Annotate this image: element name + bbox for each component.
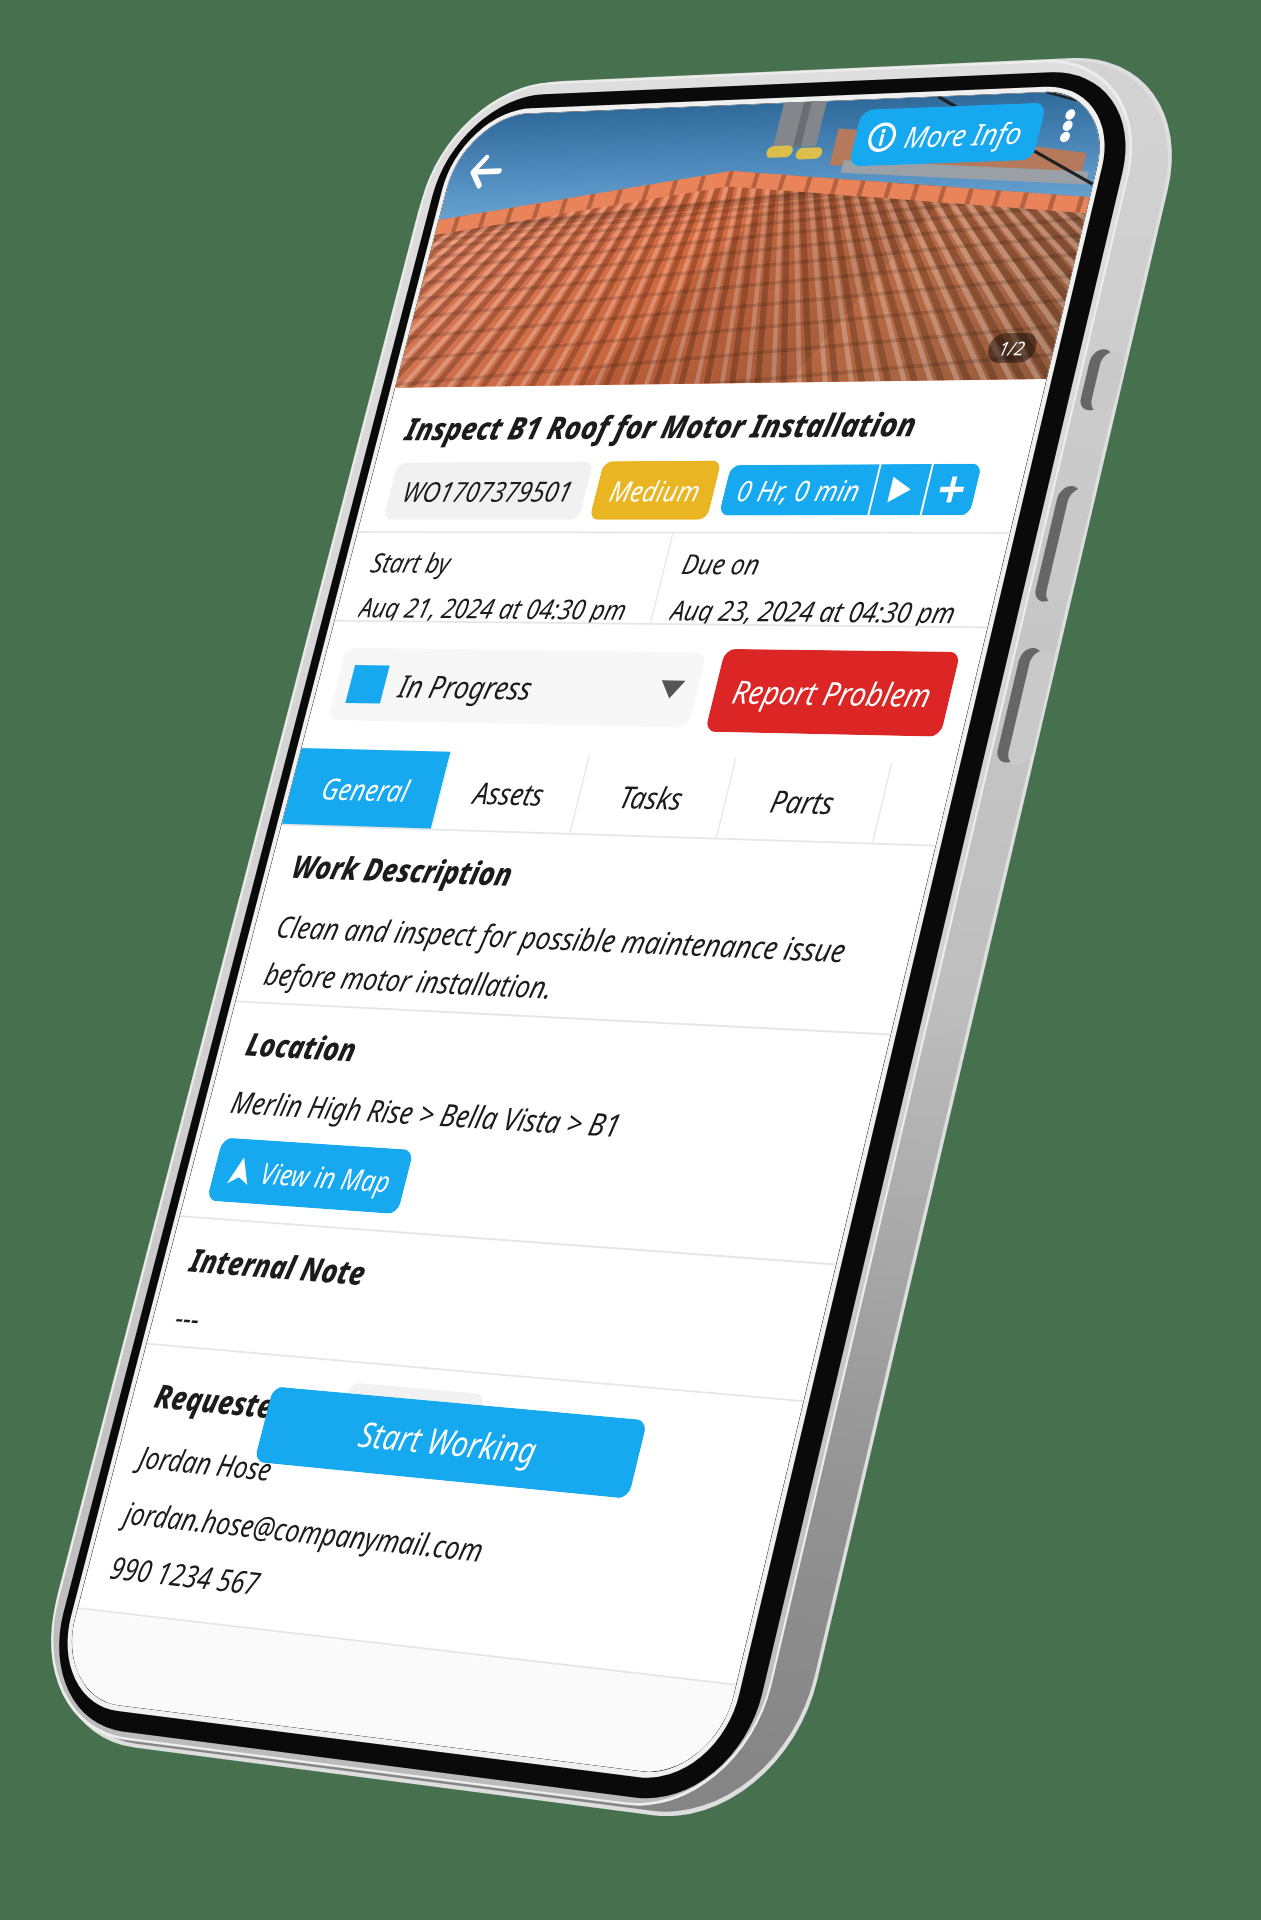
button[interactable]: More options — [916, 20, 970, 74]
staticText: Assets — [294, 913, 402, 967]
staticText: Location — [36, 1258, 211, 1315]
staticText: Parts — [747, 913, 839, 967]
staticText: Requested by — [36, 1725, 307, 1782]
staticText: Internal Note — [36, 1546, 313, 1603]
button[interactable]: Assets — [240, 887, 456, 992]
button[interactable]: View in Map — [36, 1413, 340, 1497]
button[interactable]: Medium — [365, 491, 547, 571]
button[interactable]: More Info — [629, 14, 904, 92]
button[interactable]: Report Problem — [623, 743, 970, 853]
button[interactable]: Add time — [866, 497, 936, 565]
staticText: Report Problem — [651, 770, 942, 827]
button[interactable]: Start Working — [216, 1729, 786, 1827]
staticText: Inspect B1 Roof for Motor Installation — [36, 414, 826, 473]
staticText: More Info — [705, 26, 878, 80]
button[interactable]: Parts — [678, 887, 908, 992]
staticText: 0 Hr, 0 min — [583, 505, 766, 557]
button[interactable]: In Progress — [30, 748, 597, 848]
staticText: Customer — [355, 1727, 518, 1779]
button[interactable]: Start timer — [789, 497, 863, 565]
staticText: Due on — [527, 604, 644, 654]
staticText: Aug 21, 2024 at 04:30 pm — [36, 666, 458, 711]
button[interactable]: Tasks — [456, 887, 678, 992]
staticText: Tasks — [520, 913, 614, 967]
staticText: --- — [36, 1623, 74, 1677]
staticText: View in Map — [112, 1429, 316, 1481]
staticText: Start Working — [367, 1748, 636, 1808]
button[interactable]: WO1707379501 — [36, 491, 349, 571]
button[interactable]: 0 Hr, 0 min — [563, 497, 786, 565]
staticText: 1/2 — [921, 327, 958, 361]
staticText: Clean and inspect for possible maintenan… — [36, 1101, 930, 1220]
staticText: Merlin High Rise > Bella Vista > B1 — [36, 1337, 642, 1391]
staticText: Work Description — [36, 1018, 385, 1075]
staticText: Aug 23, 2024 at 04:30 pm — [527, 666, 949, 711]
button[interactable]: General — [0, 887, 240, 992]
staticText: Medium — [387, 505, 525, 557]
staticText: In Progress — [132, 770, 342, 827]
